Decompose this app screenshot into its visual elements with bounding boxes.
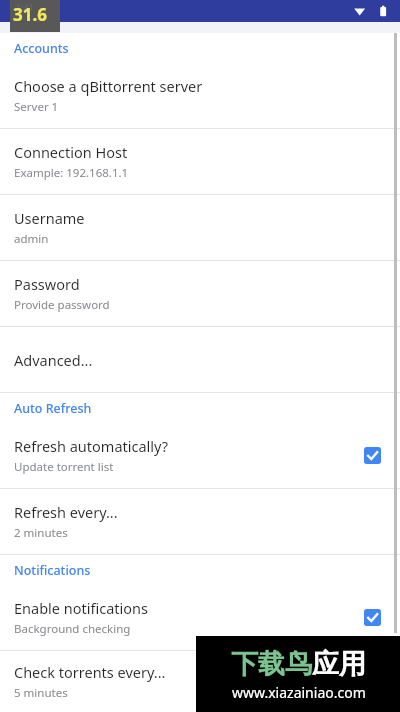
staticText: Username bbox=[14, 208, 85, 228]
staticText: admin bbox=[14, 231, 49, 247]
staticText: 1:41 bbox=[16, 1, 34, 13]
staticText: Choose a qBittorrent server bbox=[14, 76, 203, 96]
staticText: Server 1 bbox=[14, 99, 59, 115]
staticText: www.xiazainiao.com bbox=[232, 683, 366, 702]
button[interactable]: Check torrents every... bbox=[0, 651, 400, 712]
staticText: Refresh every... bbox=[14, 502, 118, 522]
staticText: Password bbox=[14, 274, 80, 294]
staticText: Background checking bbox=[14, 621, 131, 637]
staticText: Accounts bbox=[14, 40, 69, 57]
staticText: Auto Refresh bbox=[14, 400, 92, 417]
staticText: Update torrent list bbox=[14, 459, 114, 475]
button[interactable]: Password bbox=[0, 261, 400, 326]
staticText: Provide password bbox=[14, 297, 110, 313]
button[interactable]: Connection Host bbox=[0, 129, 400, 194]
button[interactable]: Refresh every... bbox=[0, 489, 400, 554]
staticText: 2 minutes bbox=[14, 525, 68, 541]
staticText: Connection Host bbox=[14, 142, 128, 162]
staticText: Example: 192.168.1.1 bbox=[14, 165, 129, 181]
button[interactable]: Advanced... bbox=[0, 327, 400, 392]
staticText: 下载鸟 bbox=[231, 647, 312, 681]
button[interactable]: Choose a qBittorrent server bbox=[0, 63, 400, 128]
staticText: Notifications bbox=[14, 562, 91, 579]
staticText: Enable notifications bbox=[14, 598, 148, 618]
button[interactable]: Enable notifications bbox=[0, 585, 400, 650]
staticText: Check torrents every... bbox=[14, 662, 166, 682]
other: Enabled checkbox bbox=[364, 609, 381, 626]
staticText: 31.6 bbox=[13, 3, 47, 26]
other: Enabled checkbox bbox=[364, 447, 381, 464]
staticText: 5 minutes bbox=[14, 685, 68, 701]
staticText: 应用 bbox=[312, 647, 366, 681]
staticText: Refresh automatically? bbox=[14, 436, 169, 456]
button[interactable]: Username bbox=[0, 195, 400, 260]
button[interactable]: Refresh automatically? bbox=[0, 423, 400, 488]
staticText: Advanced... bbox=[14, 350, 93, 370]
